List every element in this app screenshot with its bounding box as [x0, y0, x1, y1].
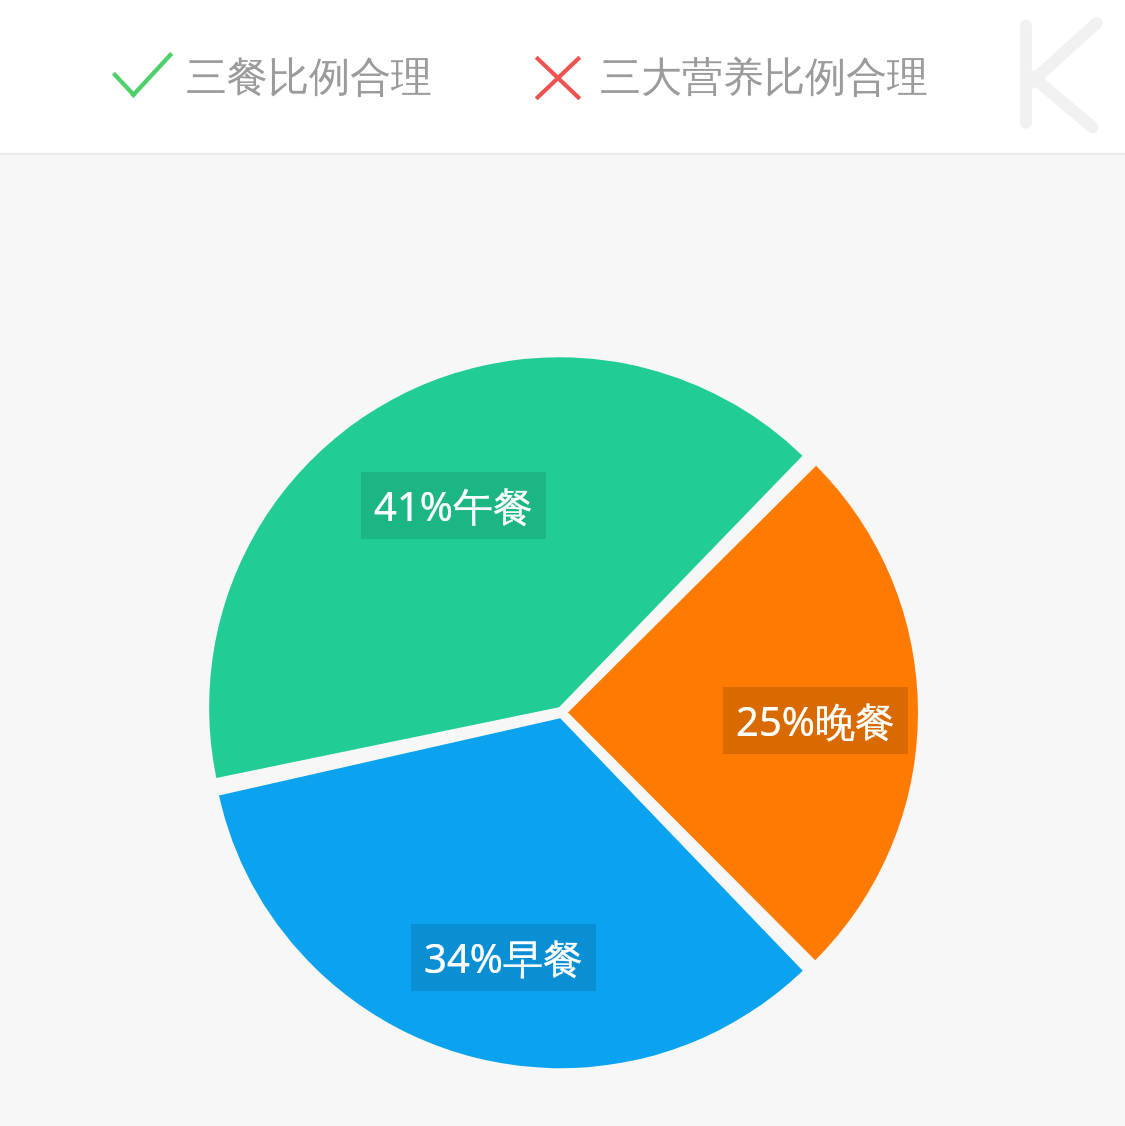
button[interactable]: Passed: [112, 42, 432, 114]
staticText: 41%午餐: [374, 478, 533, 533]
button[interactable]: 41%午餐: [361, 472, 546, 539]
other: Passed: [112, 52, 172, 104]
button[interactable]: 25%晚餐: [723, 687, 908, 754]
button[interactable]: Failed: [532, 42, 928, 114]
button[interactable]: 34%早餐: [411, 924, 596, 991]
staticText: 25%晚餐: [736, 693, 895, 748]
staticText: 三大营养比例合理: [600, 52, 928, 104]
other: Failed: [532, 52, 584, 104]
staticText: 34%早餐: [424, 930, 583, 985]
staticText: 三餐比例合理: [186, 52, 432, 104]
